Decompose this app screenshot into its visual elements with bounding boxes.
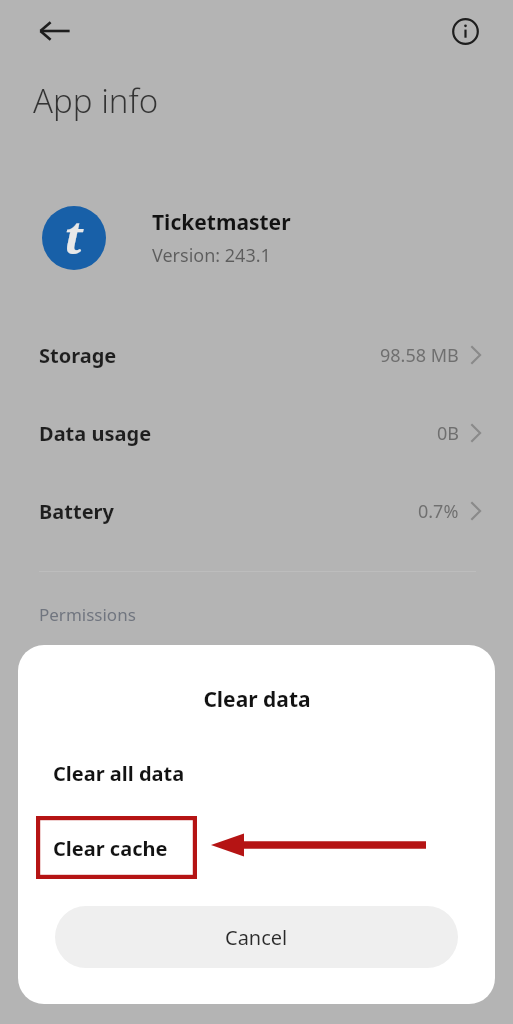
staticText: 0.7% <box>418 499 459 524</box>
staticText: Clear data <box>203 685 311 714</box>
staticText: 0B <box>437 421 459 446</box>
staticText: Cancel <box>225 924 288 951</box>
staticText: Clear all data <box>53 760 185 787</box>
button[interactable]: Clear cache <box>18 822 495 874</box>
button[interactable]: Back <box>30 7 78 55</box>
staticText: App info <box>33 78 159 123</box>
staticText: Ticketmaster <box>152 208 291 237</box>
staticText: Battery <box>39 498 114 525</box>
button[interactable]: App info help <box>441 7 489 55</box>
staticText: t <box>64 205 84 268</box>
staticText: 98.58 MB <box>380 343 459 368</box>
button[interactable]: Clear all data <box>18 747 495 799</box>
staticText: Storage <box>39 342 117 369</box>
button[interactable]: Battery <box>0 488 513 534</box>
staticText: Version: 243.1 <box>152 243 271 268</box>
staticText: Data usage <box>39 420 152 447</box>
button[interactable]: Data usage <box>0 410 513 456</box>
button[interactable]: Cancel <box>55 906 458 968</box>
button[interactable]: Storage <box>0 332 513 378</box>
staticText: Clear cache <box>53 835 168 862</box>
staticText: Permissions <box>39 603 136 626</box>
